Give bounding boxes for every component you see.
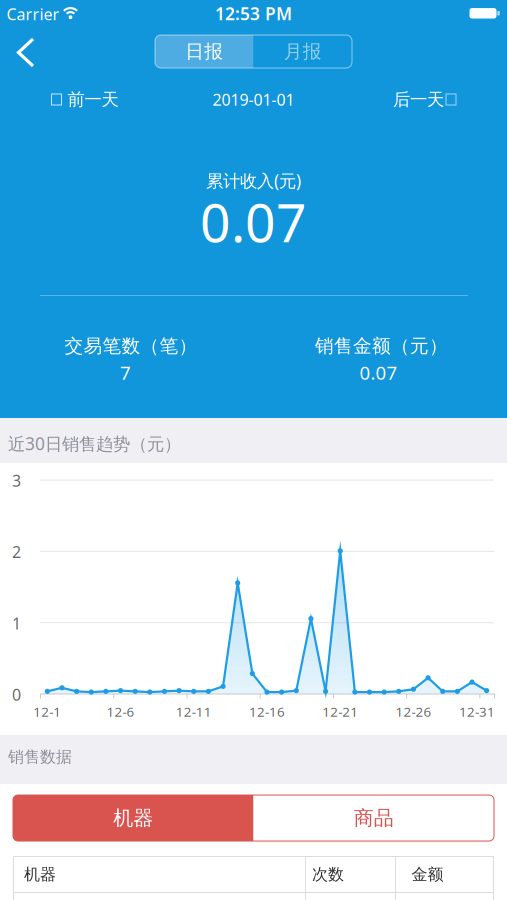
staticText: 0 [12,684,21,705]
staticText: 2 [12,541,21,562]
staticText: 0.07 [200,186,307,257]
button[interactable]: 日报 [155,35,253,68]
staticText: 1 [12,613,21,634]
staticText: 7 [120,360,131,385]
staticText: 近30日销售趋势（元） [8,432,181,455]
staticText: 12-26 [395,703,431,720]
staticText: 日报 [185,40,223,63]
staticText: 3 [12,470,21,491]
staticText: Carrier [6,3,59,25]
staticText: 累计收入(元) [206,169,301,192]
staticText: 销售金额（元） [315,334,448,357]
button[interactable]: Back [3,30,47,74]
button[interactable]: 商品 [253,795,494,841]
staticText: 0.07 [359,360,397,385]
staticText: 前一天 [67,89,118,110]
button[interactable]: 月报 [253,35,352,68]
staticText: 2019-01-01 [212,89,294,110]
staticText: 机器 [24,865,56,884]
staticText: 12-1 [33,703,61,720]
staticText: 后一天 [393,89,444,110]
staticText: 机器 [113,806,153,830]
staticText: 月报 [284,40,322,63]
staticText: 交易笔数（笔） [64,334,197,357]
staticText: 12-16 [249,703,285,720]
button[interactable]: 前一天 [51,89,118,110]
staticText: 12-6 [106,703,134,720]
staticText: 12-31 [459,703,495,720]
staticText: 12:53 PM [215,2,292,25]
staticText: 次数 [312,865,344,884]
button[interactable]: 机器 [13,795,253,841]
staticText: 商品 [354,806,394,830]
button[interactable]: 后一天 [393,89,456,110]
staticText: 12-11 [176,703,212,720]
staticText: 金额 [411,865,443,884]
staticText: 12-21 [322,703,358,720]
staticText: 销售数据 [8,747,72,767]
